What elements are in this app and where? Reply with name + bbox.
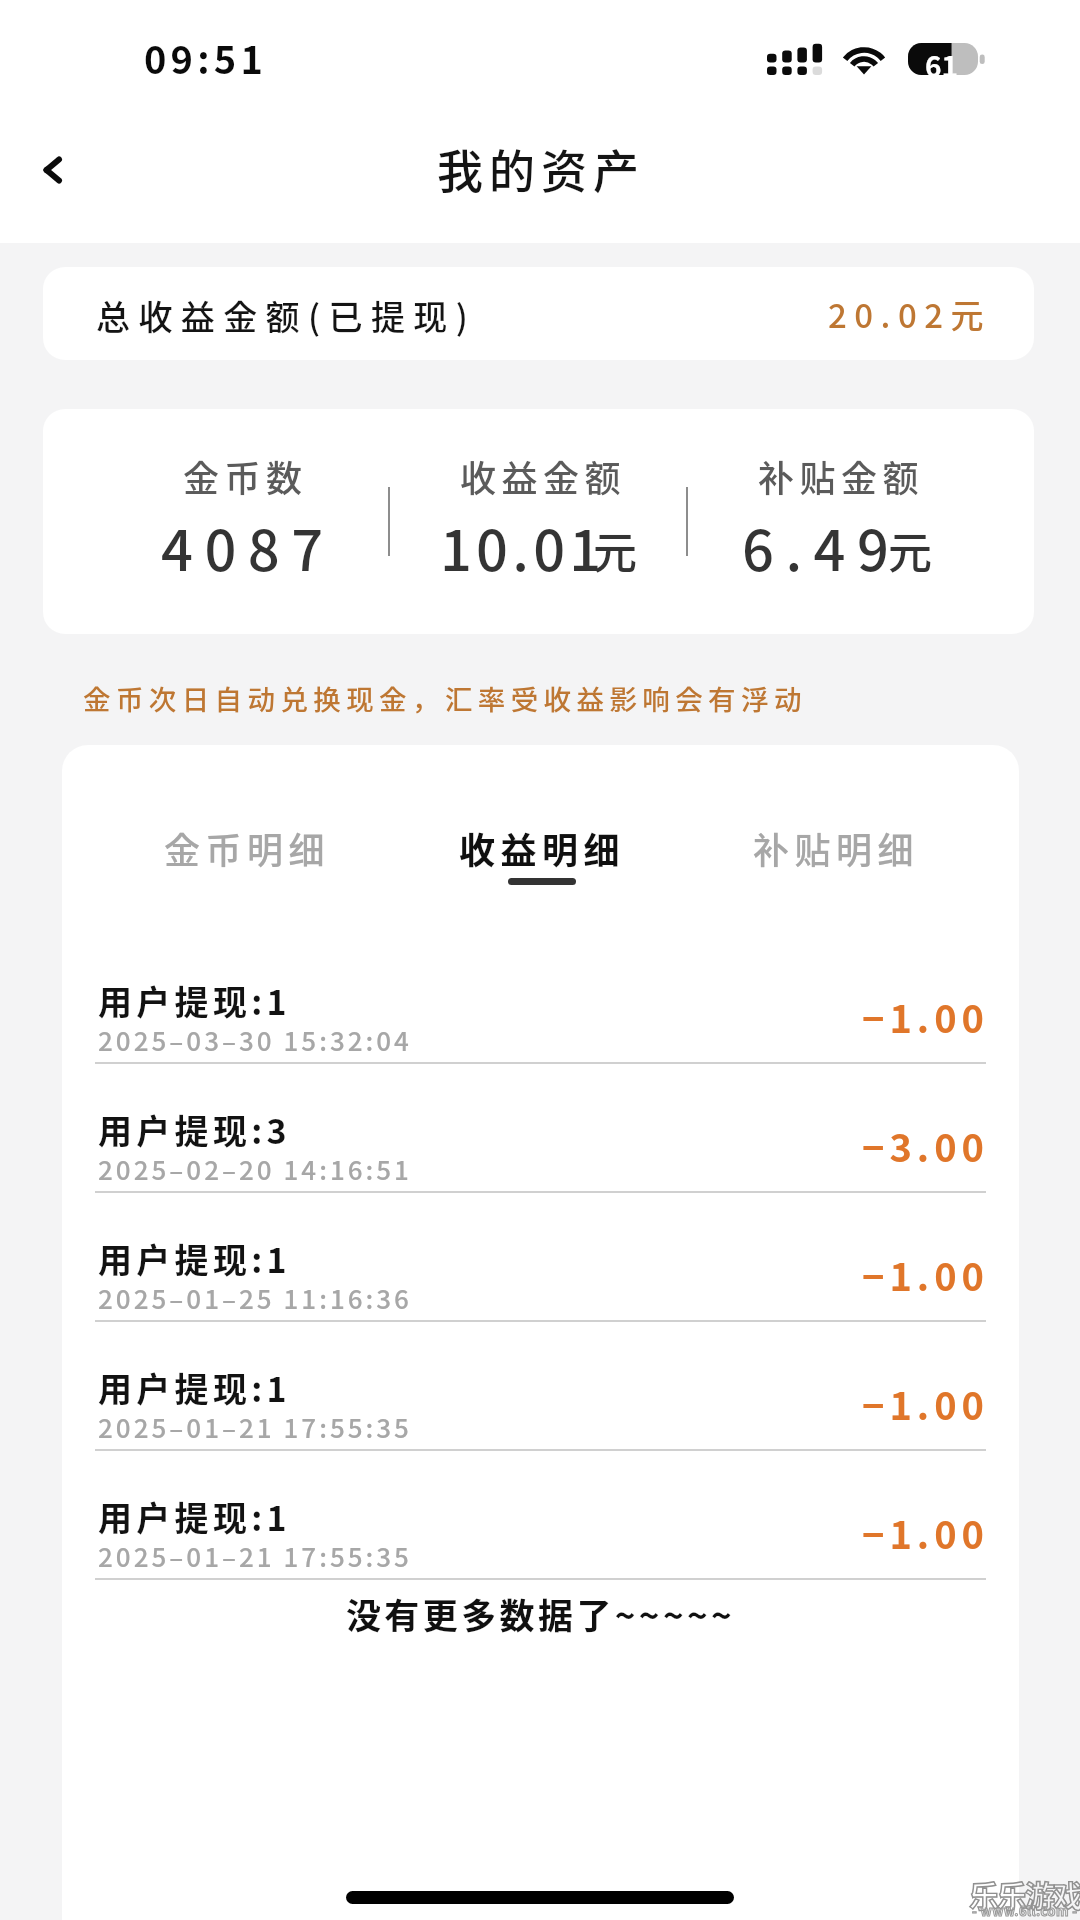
staticText: 收益金额 bbox=[460, 450, 627, 502]
staticText: 没有更多数据了~~~~~ bbox=[62, 1588, 1019, 1639]
button[interactable]: 用户提现:1 bbox=[62, 974, 1019, 1103]
button[interactable]: 收益金额 bbox=[390, 409, 686, 634]
button[interactable]: 总收益金额(已提现) bbox=[43, 267, 1034, 360]
staticText: 补贴金额 bbox=[758, 450, 925, 502]
button[interactable]: 用户提现:1 bbox=[62, 1361, 1019, 1490]
button[interactable]: 用户提现:1 bbox=[62, 1232, 1019, 1361]
staticText: 总收益金额(已提现) bbox=[96, 291, 477, 340]
staticText: 4087 bbox=[161, 506, 335, 587]
staticText: 61 bbox=[925, 45, 959, 77]
staticText: 2025–01–25 11:16:36 bbox=[98, 1279, 412, 1317]
button[interactable]: 收益明细 bbox=[459, 822, 626, 883]
button[interactable]: 金币数 bbox=[93, 409, 388, 634]
staticText: 金币明细 bbox=[164, 822, 331, 874]
staticText: 09:51 bbox=[144, 30, 268, 85]
staticText: 6.49 bbox=[742, 506, 901, 587]
staticText: 2025–02–20 14:16:51 bbox=[98, 1150, 412, 1188]
staticText: 用户提现:1 bbox=[98, 1492, 291, 1541]
staticText: 收益明细 bbox=[459, 822, 626, 874]
staticText: 用户提现:1 bbox=[98, 1363, 291, 1412]
staticText: 乐乐游戏 bbox=[969, 1872, 1080, 1915]
staticText: 补贴明细 bbox=[753, 822, 920, 874]
button[interactable]: 金币明细 bbox=[164, 822, 331, 874]
staticText: 金币数 bbox=[183, 450, 308, 502]
button[interactable]: 补贴明细 bbox=[753, 822, 920, 874]
other: Cellular signal bbox=[767, 43, 822, 75]
staticText: 元 bbox=[888, 518, 932, 582]
staticText: −1.00 bbox=[862, 1247, 990, 1302]
button[interactable]: 用户提现:1 bbox=[62, 1490, 1019, 1619]
staticText: 我的资产 bbox=[434, 135, 642, 202]
staticText: 元 bbox=[593, 518, 637, 582]
staticText: −1.00 bbox=[862, 1376, 990, 1431]
staticText: 20.02元 bbox=[828, 290, 992, 338]
button[interactable]: 补贴金额 bbox=[688, 409, 984, 634]
staticText: −3.00 bbox=[862, 1118, 990, 1173]
staticText: 用户提现:1 bbox=[98, 1234, 291, 1283]
other: Battery 61 percent bbox=[908, 43, 985, 75]
other: Wi-Fi bbox=[840, 44, 888, 74]
staticText: 金币次日自动兑换现金，汇率受收益影响会有浮动 bbox=[83, 678, 807, 718]
staticText: −1.00 bbox=[862, 1505, 990, 1560]
button[interactable]: 用户提现:3 bbox=[62, 1103, 1019, 1232]
staticText: - www.6ll.com - bbox=[972, 1901, 1078, 1920]
staticText: 2025–01–21 17:55:35 bbox=[98, 1537, 412, 1575]
button[interactable]: Back bbox=[10, 134, 96, 206]
staticText: 用户提现:3 bbox=[98, 1105, 291, 1154]
staticText: 10.01 bbox=[440, 506, 606, 587]
staticText: 用户提现:1 bbox=[98, 976, 291, 1025]
staticText: −1.00 bbox=[862, 989, 990, 1044]
staticText: 2025–03–30 15:32:04 bbox=[98, 1021, 412, 1059]
staticText: 2025–01–21 17:55:35 bbox=[98, 1408, 412, 1446]
